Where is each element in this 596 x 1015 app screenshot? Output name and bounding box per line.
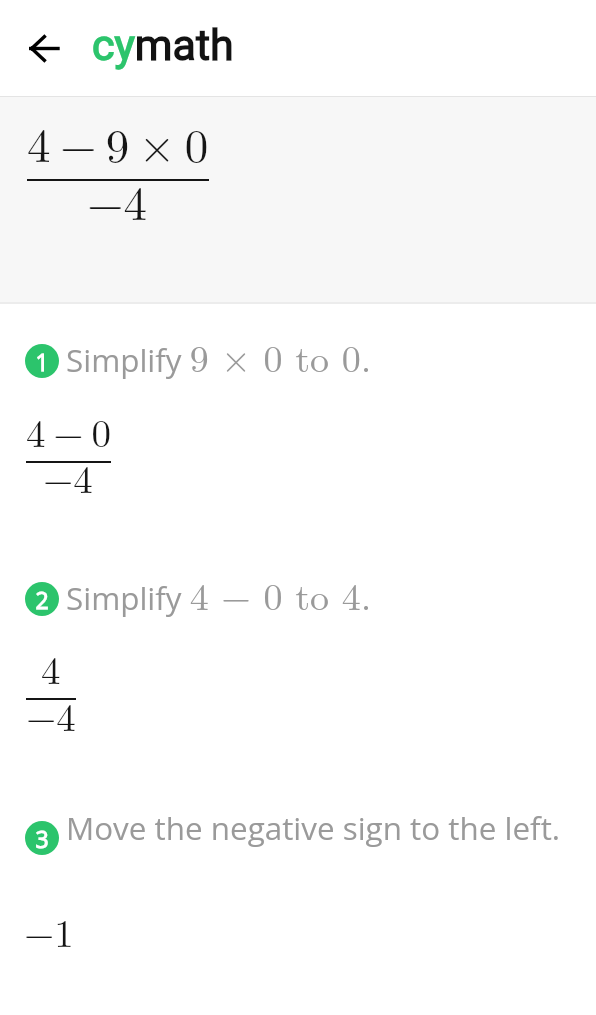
staticText: 4 − 0 [26,403,111,458]
button[interactable]: 2 [0,572,596,626]
staticText: Move the negative sign to the left. [66,806,561,849]
staticText: −4 [87,167,148,234]
staticText: 2 [35,584,49,615]
staticText: 1 [35,346,49,377]
staticText: −4 [43,449,93,504]
staticText: Simplify 4 − 0 to 4. [66,567,372,621]
staticText: Simplify 9 × 0 to 0. [66,329,372,383]
staticText: 4 − 9 × 0 [27,109,209,176]
staticText: −4 [26,687,76,742]
staticText: 3 [35,823,49,854]
staticText: 4 [41,640,61,695]
staticText: −1 [24,903,74,958]
button[interactable]: cymath [88,12,230,76]
button[interactable]: Back [15,20,72,77]
button[interactable]: 1 [0,334,596,388]
staticText: cymath [92,20,234,70]
button[interactable]: 3 [0,811,596,865]
